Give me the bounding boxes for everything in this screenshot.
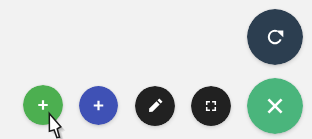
button[interactable]: Close	[247, 78, 303, 134]
button[interactable]: Fullscreen	[191, 86, 231, 126]
button[interactable]: Edit	[135, 86, 175, 126]
button[interactable]: Add new	[79, 86, 118, 125]
button[interactable]: Add	[23, 85, 63, 125]
button[interactable]: Refresh	[247, 9, 303, 65]
